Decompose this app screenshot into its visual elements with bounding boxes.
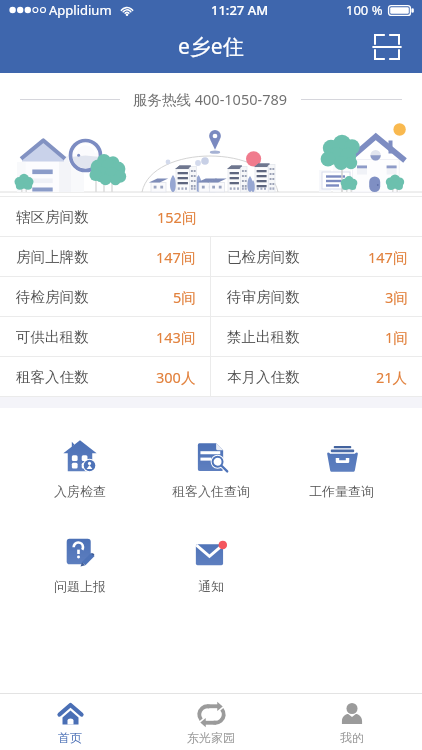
staticText: 1间 — [385, 327, 408, 347]
staticText: 本月入住数 — [227, 368, 300, 386]
staticText: 入房检查 — [54, 483, 106, 499]
button[interactable]: 问题上报 — [15, 533, 145, 594]
staticText: 租客入住查询 — [172, 483, 250, 499]
staticText: 东光家园 — [187, 730, 235, 745]
button[interactable]: 房间上牌数 — [0, 237, 210, 276]
button[interactable]: 首页 — [0, 694, 140, 750]
staticText: 辖区房间数 — [16, 208, 89, 226]
staticText: 租客入住数 — [16, 368, 89, 386]
button[interactable]: 辖区房间数 — [0, 197, 211, 236]
staticText: 可供出租数 — [16, 328, 89, 346]
staticText: 5间 — [173, 287, 196, 307]
staticText: 100 % — [346, 1, 383, 19]
staticText: 待检房间数 — [16, 288, 89, 306]
staticText: 通知 — [198, 578, 224, 594]
staticText: 禁止出租数 — [227, 328, 300, 346]
staticText: 147间 — [368, 247, 408, 267]
button[interactable]: 东光家园 — [140, 694, 281, 750]
button[interactable]: 禁止出租数 — [211, 317, 422, 356]
staticText: 21人 — [376, 367, 408, 387]
button[interactable]: 待审房间数 — [211, 277, 422, 316]
staticText: 143间 — [156, 327, 196, 347]
button[interactable]: Scan QR code — [365, 25, 409, 69]
button[interactable]: 可供出租数 — [0, 317, 210, 356]
staticText: 11:27 AM — [211, 1, 269, 19]
staticText: 3间 — [385, 287, 408, 307]
staticText: 工作量查询 — [309, 483, 374, 499]
staticText: 房间上牌数 — [16, 248, 89, 266]
button[interactable]: 租客入住数 — [0, 357, 210, 396]
button[interactable]: 已检房间数 — [211, 237, 422, 276]
staticText: 服务热线 400-1050-789 — [133, 89, 288, 109]
button[interactable]: 入房检查 — [15, 438, 145, 499]
staticText: 我的 — [340, 730, 364, 745]
button[interactable]: 工作量查询 — [276, 438, 407, 499]
staticText: 152间 — [157, 207, 197, 227]
button[interactable]: 本月入住数 — [211, 357, 422, 396]
button[interactable]: 通知 — [145, 533, 276, 594]
staticText: 300人 — [156, 367, 196, 387]
staticText: 首页 — [58, 730, 82, 745]
staticText: 待审房间数 — [227, 288, 300, 306]
staticText: Applidium — [49, 1, 112, 19]
staticText: 问题上报 — [54, 578, 106, 594]
staticText: e乡e住 — [178, 32, 244, 61]
staticText: 已检房间数 — [227, 248, 300, 266]
button[interactable]: 租客入住查询 — [145, 438, 276, 499]
button[interactable]: 待检房间数 — [0, 277, 210, 316]
button[interactable]: 我的 — [281, 694, 422, 750]
staticText: 147间 — [156, 247, 196, 267]
